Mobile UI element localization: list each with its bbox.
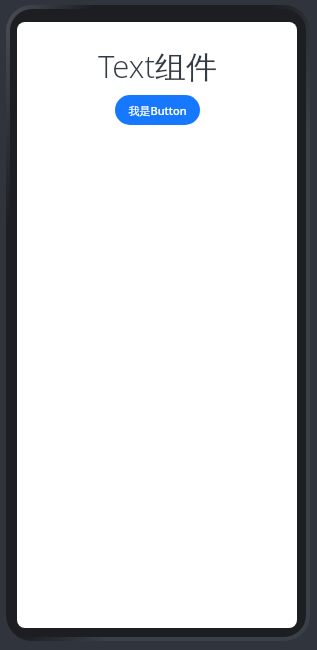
- button[interactable]: 我是Button: [115, 95, 200, 125]
- staticText: 我是Button: [128, 103, 187, 118]
- staticText: Text组件: [98, 45, 217, 87]
